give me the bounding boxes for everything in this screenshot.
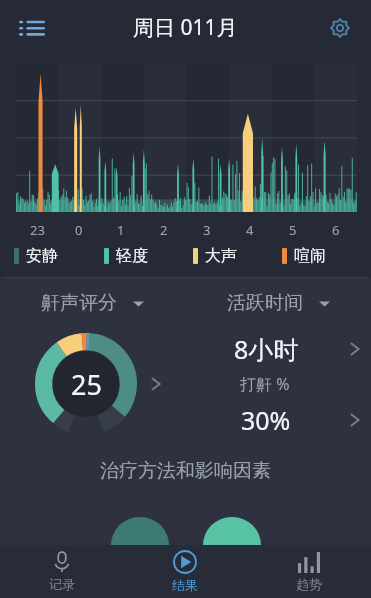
- button[interactable]: 25: [0, 324, 185, 444]
- button[interactable]: 30%: [185, 395, 371, 444]
- button[interactable]: 治疗方法和影响因素: [0, 454, 371, 488]
- staticText: 活跃时间: [227, 291, 303, 315]
- staticText: 鼾声评分: [41, 291, 117, 315]
- staticText: 轻度: [116, 246, 148, 266]
- staticText: 打鼾 %: [240, 373, 290, 395]
- staticText: 30%: [241, 403, 291, 437]
- other: Results: [173, 550, 197, 574]
- button[interactable]: Factor 1: [111, 517, 169, 545]
- staticText: 喧闹: [294, 246, 326, 266]
- staticText: 5: [289, 221, 297, 239]
- button[interactable]: 轻度: [104, 246, 193, 266]
- button[interactable]: 安静: [14, 246, 104, 266]
- staticText: 治疗方法和影响因素: [100, 459, 271, 483]
- button[interactable]: Settings: [319, 7, 361, 49]
- button[interactable]: Menu: [10, 6, 54, 50]
- staticText: 6: [332, 221, 340, 239]
- staticText: 1: [117, 221, 125, 239]
- staticText: 4: [246, 221, 254, 239]
- staticText: 结果: [172, 577, 198, 593]
- button[interactable]: 鼾声评分: [41, 291, 144, 315]
- other: Trends: [298, 551, 320, 573]
- staticText: 趋势: [296, 576, 322, 592]
- button[interactable]: Trends: [247, 545, 371, 598]
- button[interactable]: 大声: [193, 246, 282, 266]
- button[interactable]: 喧闹: [282, 246, 371, 266]
- button[interactable]: 活跃时间: [227, 291, 330, 315]
- button[interactable]: Results: [123, 545, 247, 598]
- button[interactable]: 8小时: [185, 324, 371, 373]
- other: Record: [51, 551, 73, 573]
- staticText: 大声: [205, 246, 237, 266]
- staticText: 3: [203, 221, 211, 239]
- staticText: 8小时: [234, 332, 299, 366]
- staticText: 安静: [26, 246, 58, 266]
- button[interactable]: Record: [0, 545, 123, 598]
- staticText: 2: [160, 221, 168, 239]
- staticText: 周日 011月: [133, 13, 238, 42]
- staticText: 记录: [49, 576, 75, 592]
- button[interactable]: Factor 2: [203, 517, 261, 545]
- staticText: 23: [30, 221, 45, 239]
- staticText: 25: [71, 366, 102, 403]
- staticText: 0: [75, 221, 83, 239]
